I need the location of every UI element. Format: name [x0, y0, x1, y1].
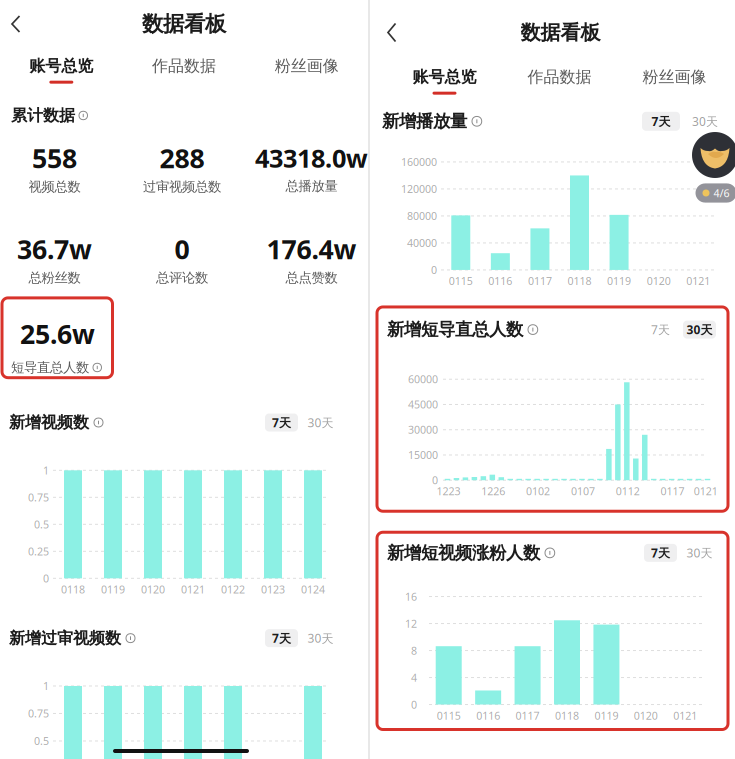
staticText: 总播放量 — [285, 178, 337, 194]
staticText: 558 — [32, 140, 77, 176]
staticText: 36.7w — [17, 231, 92, 266]
staticText: 7天 — [651, 113, 670, 129]
staticText: 过审视频总数 — [143, 179, 221, 195]
button[interactable]: 30天 — [304, 413, 337, 431]
staticText: 0119 — [607, 274, 631, 288]
button[interactable]: 30天 — [683, 321, 716, 339]
staticText: 0116 — [488, 274, 512, 288]
staticText: 0117 — [660, 484, 684, 498]
button[interactable]: 30天 — [686, 112, 724, 131]
staticText: 8 — [411, 643, 417, 658]
staticText: 总粉丝数 — [28, 269, 80, 286]
button[interactable]: 粉丝画像 — [245, 56, 368, 84]
staticText: 数据看板 — [520, 20, 600, 45]
staticText: 0120 — [141, 582, 165, 596]
button[interactable]: 7天 — [265, 413, 298, 431]
button[interactable]: 30天 — [304, 629, 337, 647]
staticText: 0115 — [437, 708, 461, 723]
staticText: 视频总数 — [28, 179, 80, 195]
staticText: 数据看板 — [142, 11, 226, 37]
staticText: 45000 — [408, 397, 438, 412]
staticText: 7天 — [272, 630, 291, 646]
staticText: 30天 — [686, 322, 712, 337]
staticText: 80000 — [407, 209, 437, 223]
staticText: 新增短导直总人数 — [387, 319, 523, 340]
staticText: 7天 — [272, 414, 291, 430]
staticText: 30天 — [307, 414, 333, 430]
staticText: 30天 — [307, 630, 333, 646]
staticText: 作品数据 — [527, 67, 591, 87]
staticText: 0.75 — [28, 490, 49, 504]
staticText: 新增播放量 — [382, 111, 467, 132]
staticText: 短导直总人数 — [11, 359, 89, 376]
staticText: 176.4w — [266, 231, 356, 266]
staticText: 0.25 — [28, 544, 49, 558]
button[interactable]: 作品数据 — [123, 56, 245, 84]
staticText: 16 — [405, 589, 417, 604]
staticText: 0120 — [634, 708, 658, 723]
button[interactable]: 7天 — [265, 629, 298, 647]
staticText: 0117 — [516, 708, 540, 723]
button[interactable]: 7天 — [644, 544, 677, 562]
staticText: 7天 — [651, 545, 670, 561]
button[interactable]: Back — [386, 22, 398, 43]
staticText: 0 — [431, 263, 437, 277]
staticText: 账号总览 — [412, 67, 476, 87]
staticText: 新增短视频涨粉人数 — [387, 542, 540, 563]
button[interactable]: Rewards — [692, 132, 735, 178]
staticText: 0121 — [181, 582, 205, 596]
button[interactable]: 7天 — [644, 321, 677, 339]
button[interactable]: 粉丝画像 — [617, 67, 732, 95]
staticText: 0117 — [528, 274, 552, 288]
staticText: 作品数据 — [152, 56, 216, 76]
staticText: 4 — [411, 670, 417, 685]
staticText: 160000 — [401, 155, 437, 169]
staticText: 粉丝画像 — [275, 56, 339, 76]
staticText: 25.6w — [20, 316, 95, 351]
staticText: 账号总览 — [29, 56, 93, 76]
staticText: 0122 — [221, 582, 245, 596]
staticText: 12 — [405, 616, 417, 631]
staticText: 0102 — [526, 484, 550, 498]
staticText: 0116 — [476, 708, 500, 723]
staticText: 30000 — [408, 423, 438, 437]
staticText: 1 — [43, 679, 49, 693]
staticText: 0 — [432, 473, 438, 487]
button[interactable]: 作品数据 — [502, 67, 617, 95]
staticText: 1223 — [436, 484, 460, 498]
staticText: 粉丝画像 — [642, 67, 706, 87]
staticText: 新增过审视频数 — [9, 628, 121, 648]
staticText: 累计数据 — [11, 106, 75, 125]
staticText: 总评论数 — [156, 269, 208, 286]
staticText: 0 — [43, 571, 49, 585]
staticText: 0119 — [594, 708, 618, 723]
staticText: 120000 — [401, 182, 437, 196]
staticText: 4/6 — [713, 186, 729, 200]
staticText: 0 — [174, 231, 189, 266]
staticText: 15000 — [408, 448, 438, 462]
staticText: 288 — [159, 140, 204, 176]
staticText: 总点赞数 — [285, 269, 337, 286]
staticText: 0121 — [686, 274, 710, 288]
staticText: 43318.0w — [255, 141, 368, 175]
staticText: 30天 — [692, 113, 718, 129]
staticText: 0118 — [567, 274, 591, 288]
staticText: 1226 — [481, 484, 505, 498]
button[interactable]: 30天 — [683, 544, 716, 562]
staticText: 0107 — [571, 484, 595, 498]
button[interactable]: 账号总览 — [387, 67, 502, 95]
staticText: 40000 — [407, 236, 437, 250]
staticText: 0118 — [61, 582, 85, 596]
staticText: 0.5 — [34, 734, 49, 748]
button[interactable]: 7天 — [642, 112, 680, 131]
button[interactable]: 账号总览 — [0, 56, 123, 84]
staticText: 60000 — [408, 372, 438, 386]
staticText: 0115 — [449, 274, 473, 288]
button[interactable]: Back — [10, 14, 22, 33]
staticText: 0124 — [301, 582, 325, 596]
staticText: 0118 — [555, 708, 579, 723]
staticText: 0120 — [647, 274, 671, 288]
staticText: 0119 — [101, 582, 125, 596]
staticText: 新增视频数 — [9, 413, 89, 432]
staticText: 0112 — [616, 484, 640, 498]
